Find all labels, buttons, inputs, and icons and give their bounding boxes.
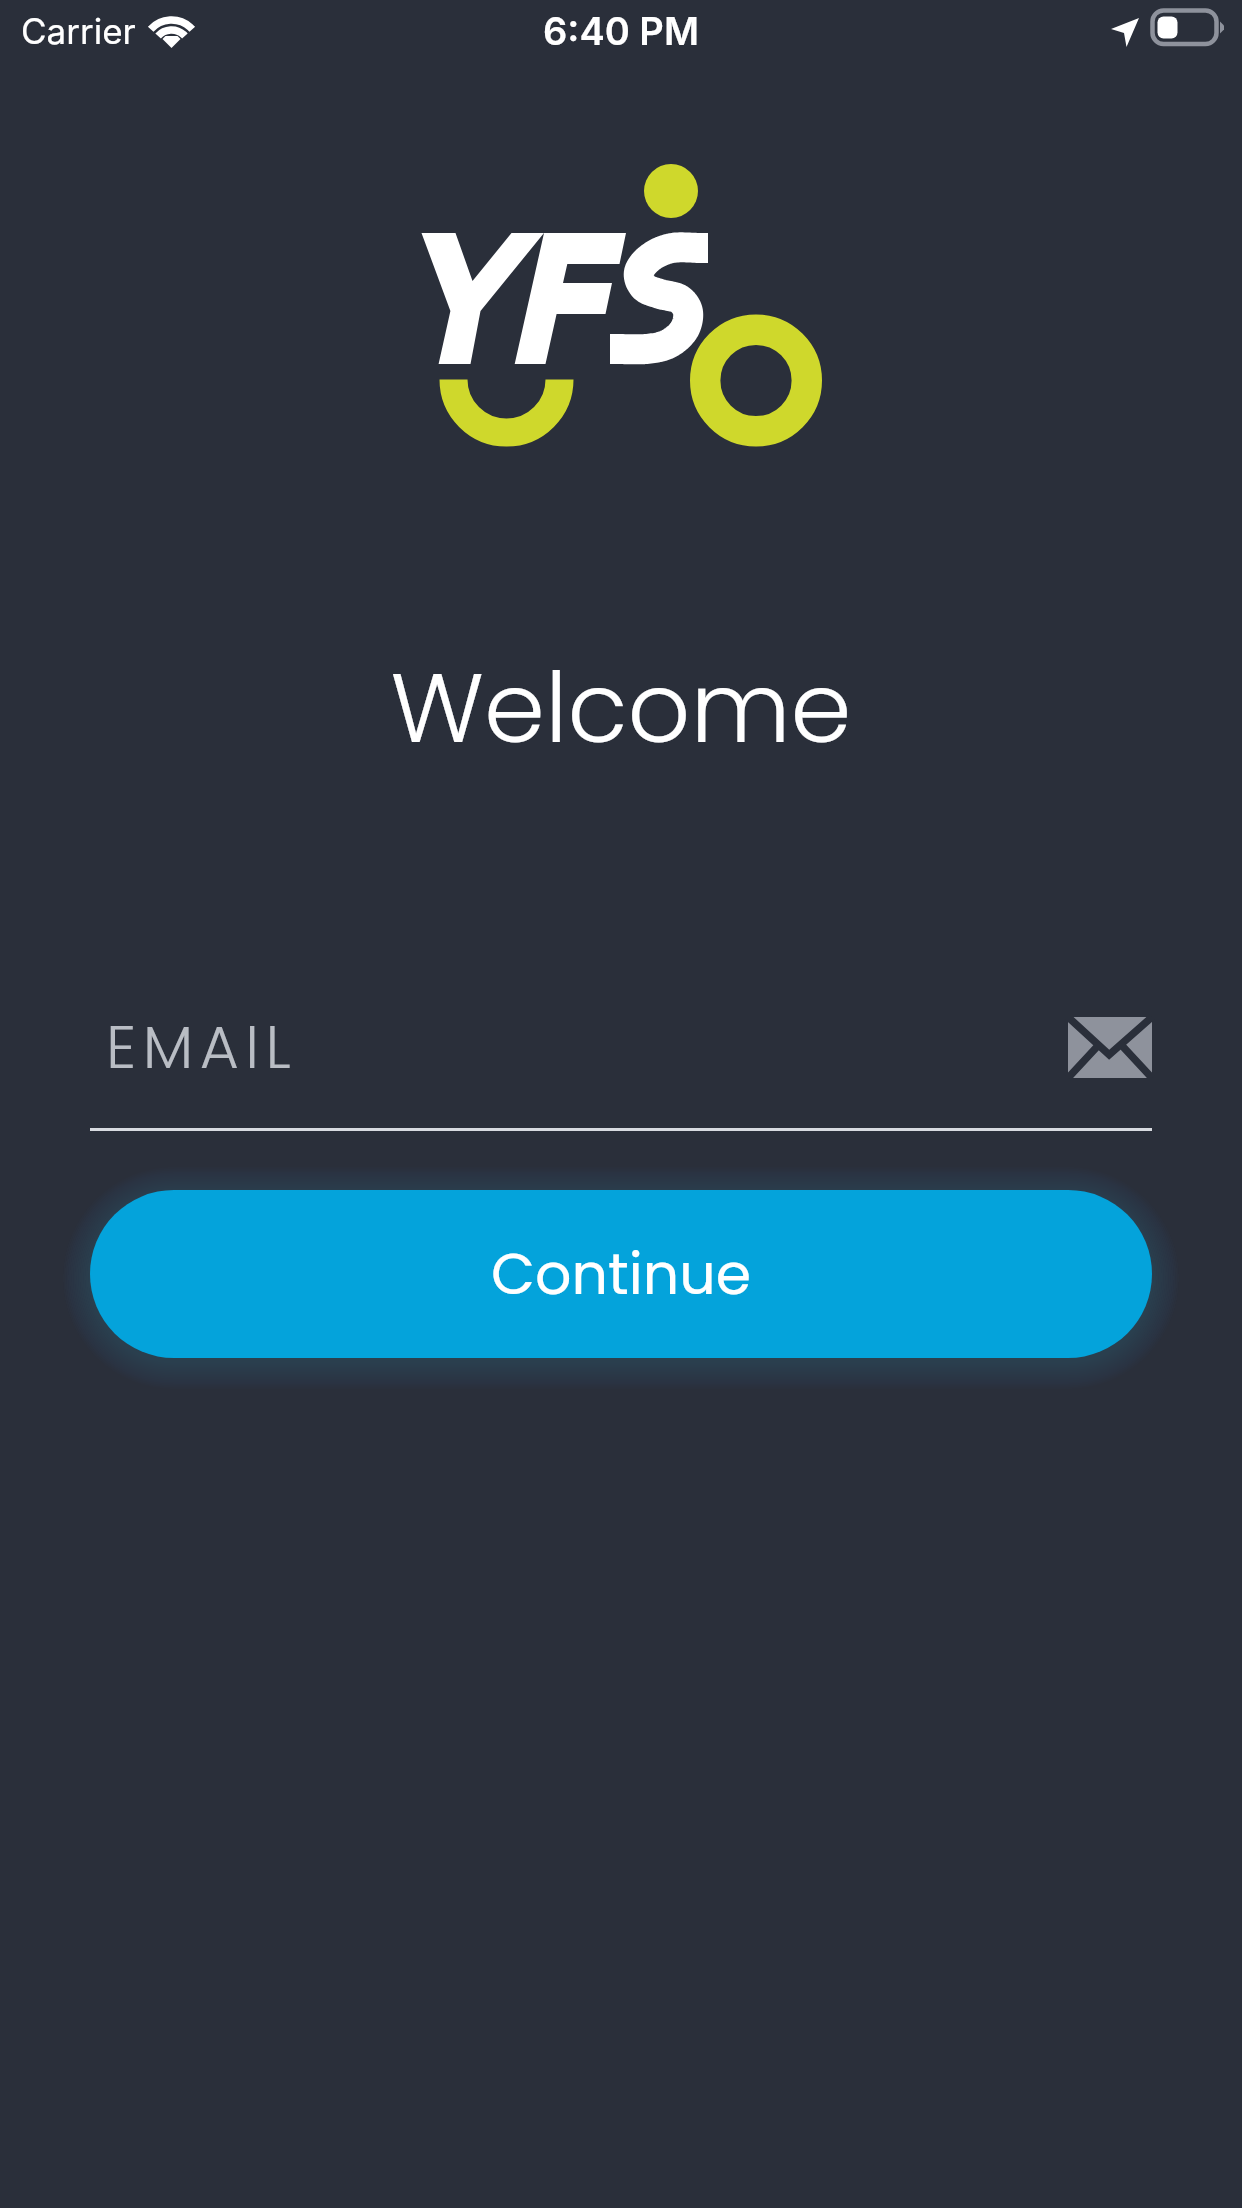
button[interactable]: EMAIL — [90, 982, 1152, 1112]
staticText: Continue — [491, 1234, 752, 1314]
button[interactable]: Continue — [90, 1190, 1152, 1358]
staticText: 6:40 PM — [543, 8, 699, 54]
staticText: Carrier — [21, 10, 136, 52]
staticText: Welcome — [0, 639, 1242, 776]
staticText: EMAIL — [106, 1005, 298, 1089]
other: Status icons — [1111, 9, 1241, 53]
other: Email — [1068, 1017, 1152, 1078]
